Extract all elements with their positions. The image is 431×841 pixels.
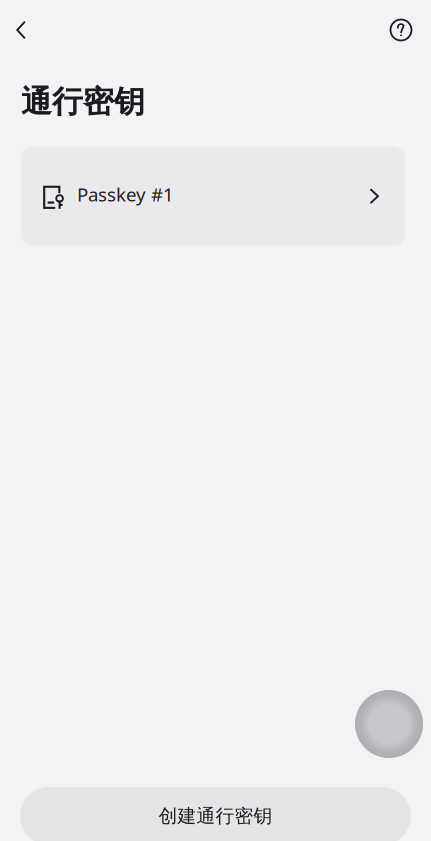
- button[interactable]: Help: [380, 9, 422, 51]
- button[interactable]: Back: [0, 9, 42, 51]
- button[interactable]: Passkey #1: [21, 147, 405, 246]
- staticText: Passkey #1: [77, 182, 174, 207]
- button[interactable]: 创建通行密钥: [20, 787, 411, 841]
- staticText: 创建通行密钥: [158, 804, 272, 827]
- staticText: 通行密钥: [21, 83, 145, 121]
